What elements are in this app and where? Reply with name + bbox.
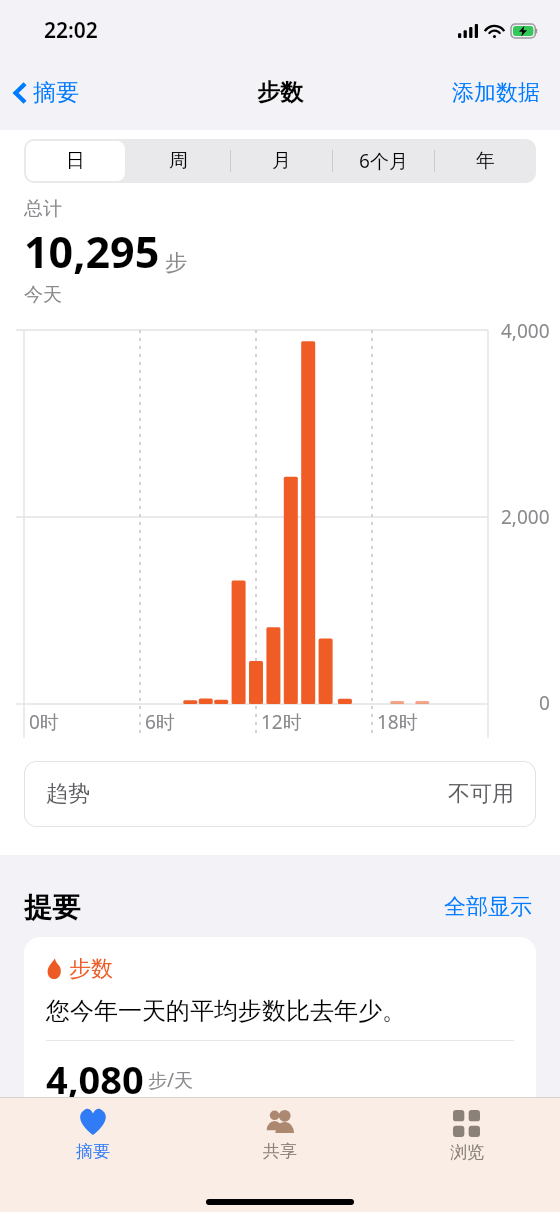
staticText: 提要 [24,890,80,925]
button[interactable]: 6个月 [332,139,434,183]
button[interactable]: 周 [127,139,230,183]
button[interactable]: 摘要 [0,1098,186,1180]
staticText: 步 [165,249,187,277]
button[interactable]: 共享 [186,1098,373,1180]
staticText: 18时 [377,709,418,735]
button[interactable]: 添加数据 [432,69,560,117]
staticText: 22:02 [44,16,98,45]
button[interactable]: 摘要 [0,70,89,115]
staticText: 月 [272,149,291,173]
staticText: 4,000 [501,318,550,344]
staticText: 步数 [257,78,303,107]
staticText: 年 [476,149,495,173]
staticText: 10,295 [24,222,160,281]
staticText: 周 [169,149,188,173]
button[interactable]: 月 [230,139,332,183]
staticText: 6个月 [359,148,408,174]
staticText: 步/天 [148,1067,194,1093]
other: Steps [46,958,63,980]
staticText: 0时 [29,709,59,735]
staticText: 总计 [24,197,62,221]
button[interactable]: Steps [24,937,536,1097]
staticText: 日 [66,149,85,173]
staticText: 摘要 [33,78,79,107]
staticText: 2,000 [501,504,550,530]
button[interactable]: 全部显示 [440,889,536,925]
button[interactable]: 年 [434,139,536,183]
button[interactable]: 日 [24,139,127,183]
staticText: 0 [539,690,550,716]
staticText: 浏览 [450,1142,484,1163]
staticText: 摘要 [76,1141,110,1162]
staticText: 您今年一天的平均步数比去年少。 [46,996,406,1026]
button[interactable]: 趋势 [24,761,536,827]
staticText: 步数 [69,955,113,983]
staticText: 12时 [261,709,302,735]
staticText: 4,080 [46,1053,144,1097]
staticText: 不可用 [448,780,514,808]
staticText: 趋势 [46,780,90,808]
staticText: 今天 [24,283,62,307]
staticText: 6时 [145,709,175,735]
button[interactable]: 浏览 [373,1098,560,1180]
staticText: 共享 [263,1141,297,1162]
